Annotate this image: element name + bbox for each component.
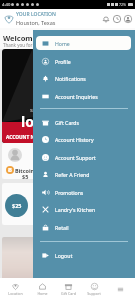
staticText: s [30, 106, 33, 114]
button[interactable]: Landry's Kitchen [36, 202, 131, 216]
staticText: Profile [55, 58, 71, 65]
button[interactable]: Account History [36, 132, 131, 146]
button[interactable]: Support [81, 278, 107, 300]
staticText: Ƀ [8, 166, 12, 174]
staticText: Retail [55, 224, 69, 231]
button[interactable]: Promotions [36, 185, 131, 199]
button[interactable]: Profile [124, 15, 132, 23]
button[interactable]: Refer A Friend [36, 167, 131, 181]
staticText: Welcome Leslie [3, 33, 61, 43]
button[interactable]: Menu [107, 278, 133, 300]
staticText: Refer A Friend [55, 171, 90, 178]
button[interactable]: Logout [36, 248, 131, 262]
button[interactable]: Location [2, 278, 29, 300]
staticText: Account Support [55, 154, 96, 161]
staticText: $25 [12, 202, 22, 209]
staticText: Home [55, 40, 70, 47]
staticText: lo [21, 112, 34, 131]
button[interactable]: Retail [36, 220, 131, 234]
button[interactable]: Home [36, 36, 131, 50]
button[interactable]: Account Support [36, 150, 131, 164]
staticText: Houston, Texas [16, 19, 56, 26]
button[interactable]: Gift Card [55, 278, 81, 300]
button[interactable]: Account Inquiries [36, 89, 131, 103]
staticText: Thank you for being a Member [3, 42, 69, 48]
staticText: Account History [55, 136, 94, 143]
button[interactable]: History [113, 15, 121, 23]
staticText: 4:40 [2, 2, 11, 8]
button[interactable]: Notifications [36, 71, 131, 85]
staticText: Gift Card [61, 291, 76, 296]
button[interactable]: Profile [36, 54, 131, 68]
button[interactable]: Home [29, 278, 55, 300]
staticText: Support [87, 291, 101, 296]
staticText: Landry's Kitchen [55, 206, 96, 213]
staticText: Bitcoin [15, 167, 35, 174]
staticText: Home [37, 291, 48, 296]
staticText: Promotions [55, 189, 84, 196]
staticText: Gift Cards [55, 119, 80, 126]
button[interactable]: Gift Cards [36, 115, 131, 129]
button[interactable]: Notifications [102, 15, 110, 23]
staticText: Notifications [55, 75, 86, 82]
staticText: YOUR LOCATION [16, 11, 56, 18]
staticText: $5 [22, 173, 29, 179]
staticText: Location [8, 291, 23, 296]
staticText: ACCOUNT NUMBER [6, 134, 52, 141]
staticText: Account Inquiries [55, 93, 98, 100]
staticText: 72% [119, 2, 127, 7]
button[interactable]: YOUR LOCATION [4, 11, 56, 26]
staticText: Logout [55, 252, 73, 259]
